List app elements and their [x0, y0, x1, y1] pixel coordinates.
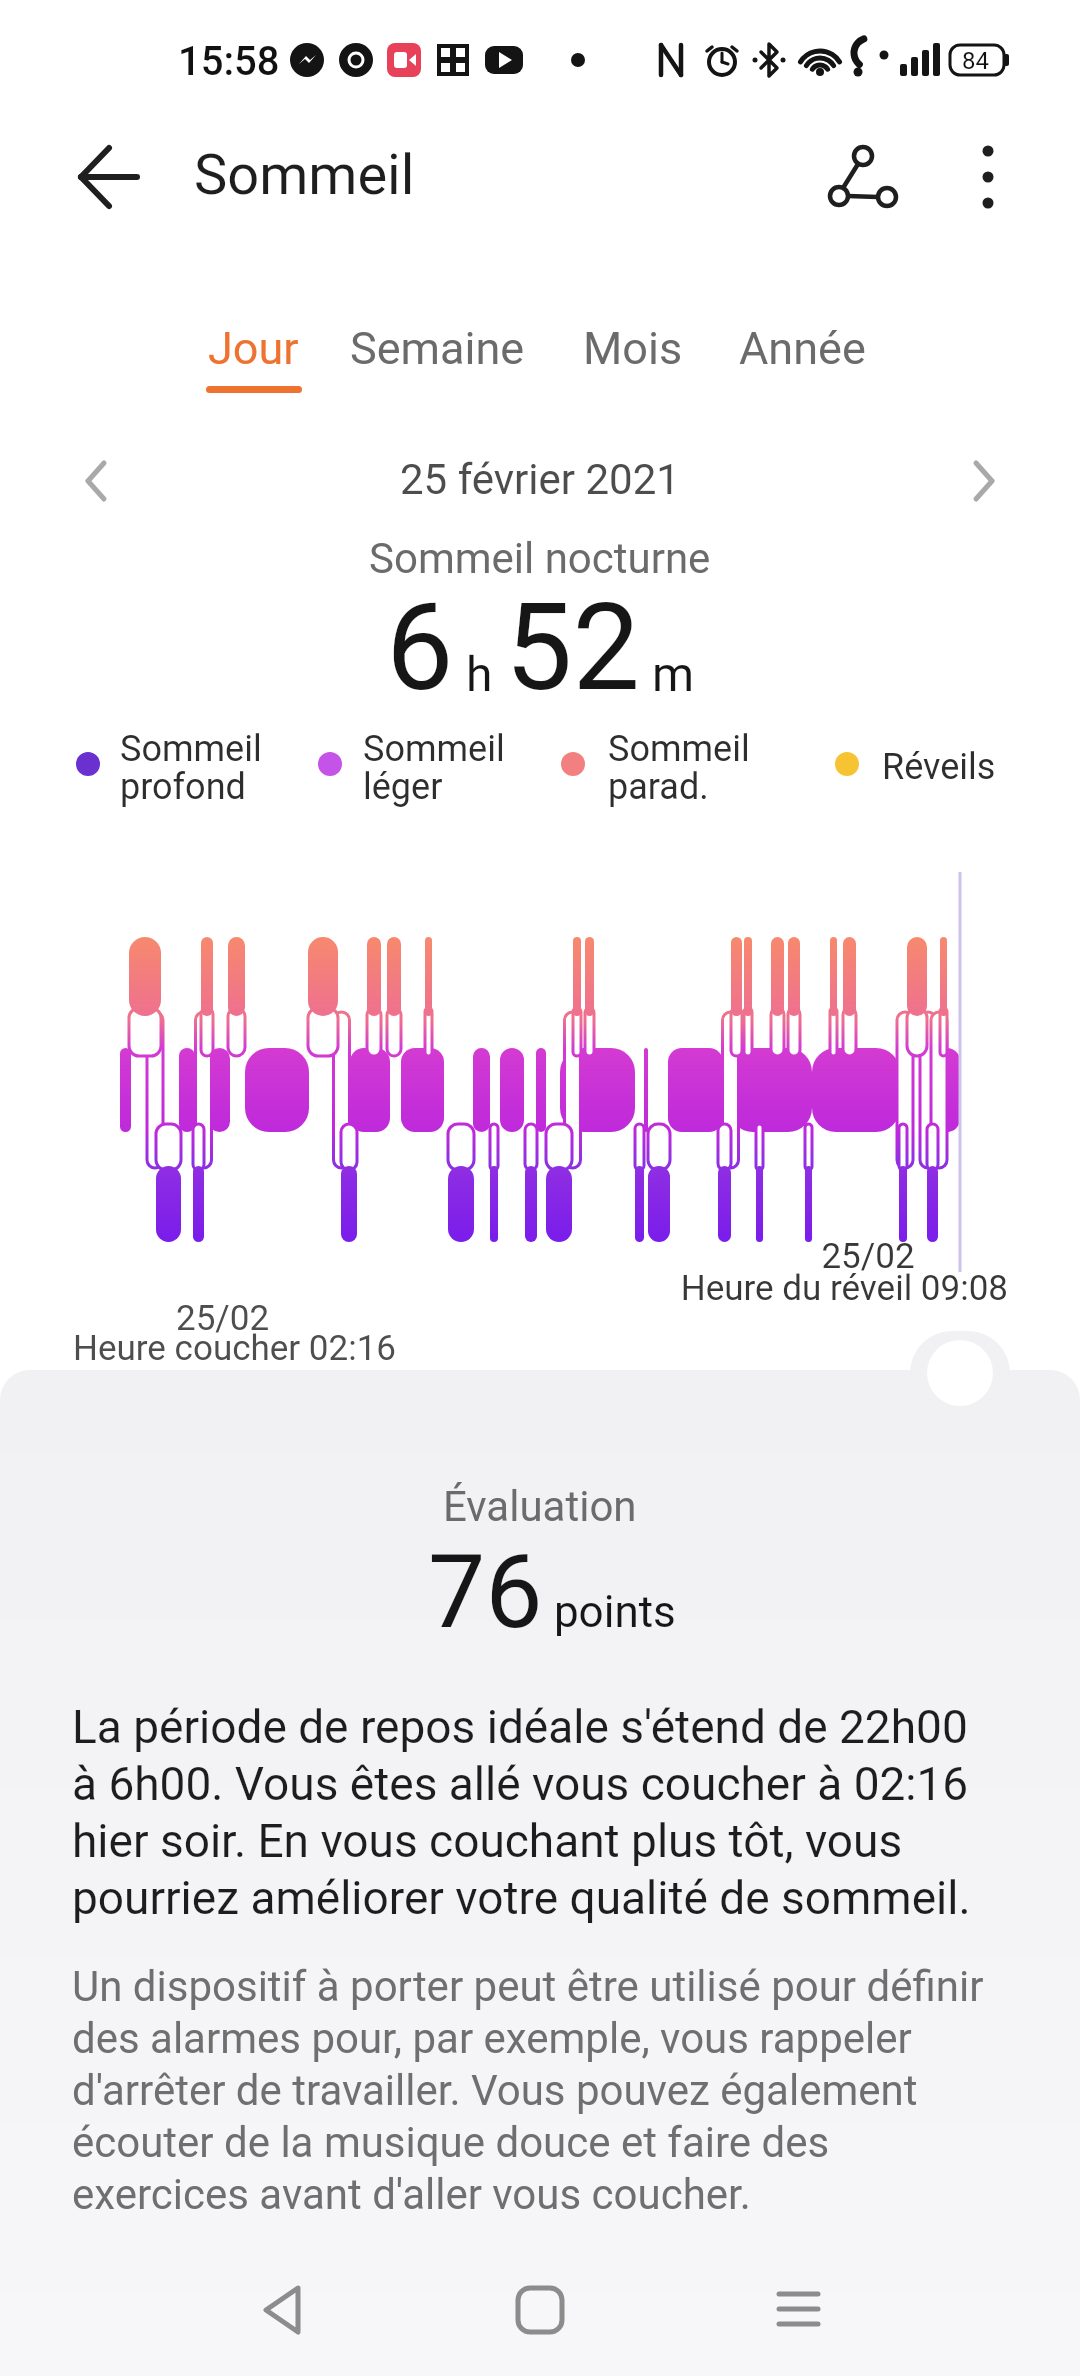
staticText: 84	[962, 47, 989, 75]
staticText: Année	[739, 322, 866, 375]
button[interactable]	[815, 130, 915, 230]
staticText: Sommeil parad.	[608, 728, 750, 808]
staticText: Évaluation	[443, 1482, 637, 1531]
staticText: Sommeil nocturne	[369, 534, 711, 583]
staticText: Sommeil léger	[363, 728, 505, 808]
staticText: 52	[505, 578, 640, 719]
staticText: Heure coucher 02:16	[73, 1328, 397, 1369]
button[interactable]	[747, 2260, 847, 2360]
button[interactable]	[233, 2260, 333, 2360]
button[interactable]	[60, 445, 130, 515]
button[interactable]	[190, 300, 320, 400]
staticText: 15:58	[178, 38, 280, 85]
button[interactable]	[568, 300, 703, 400]
staticText: Mois	[583, 322, 683, 375]
staticText: La période de repos idéale s'étend de 22…	[72, 1700, 971, 1925]
staticText: Heure du réveil 09:08	[608, 1268, 1008, 1309]
button[interactable]	[724, 300, 884, 400]
staticText: 25/02	[176, 1298, 270, 1339]
button[interactable]	[950, 130, 1030, 210]
staticText: h	[454, 646, 505, 702]
staticText: Semaine	[350, 322, 525, 375]
staticText: Sommeil	[194, 142, 415, 208]
staticText: 25 février 2021	[400, 455, 680, 504]
staticText: 25/02	[668, 1236, 1068, 1277]
staticText: Sommeil profond	[120, 728, 262, 808]
staticText: 76	[428, 1532, 543, 1652]
button[interactable]	[490, 2260, 590, 2360]
button[interactable]	[335, 300, 545, 400]
staticText: points	[543, 1586, 676, 1638]
button[interactable]	[927, 1340, 993, 1406]
button[interactable]	[950, 445, 1020, 515]
staticText: Jour	[208, 322, 299, 375]
staticText: m	[640, 646, 694, 702]
staticText: Réveils	[882, 746, 996, 788]
staticText: Un dispositif à porter peut être utilisé…	[72, 1962, 984, 2219]
staticText: 6	[386, 578, 454, 719]
button[interactable]	[60, 135, 150, 225]
